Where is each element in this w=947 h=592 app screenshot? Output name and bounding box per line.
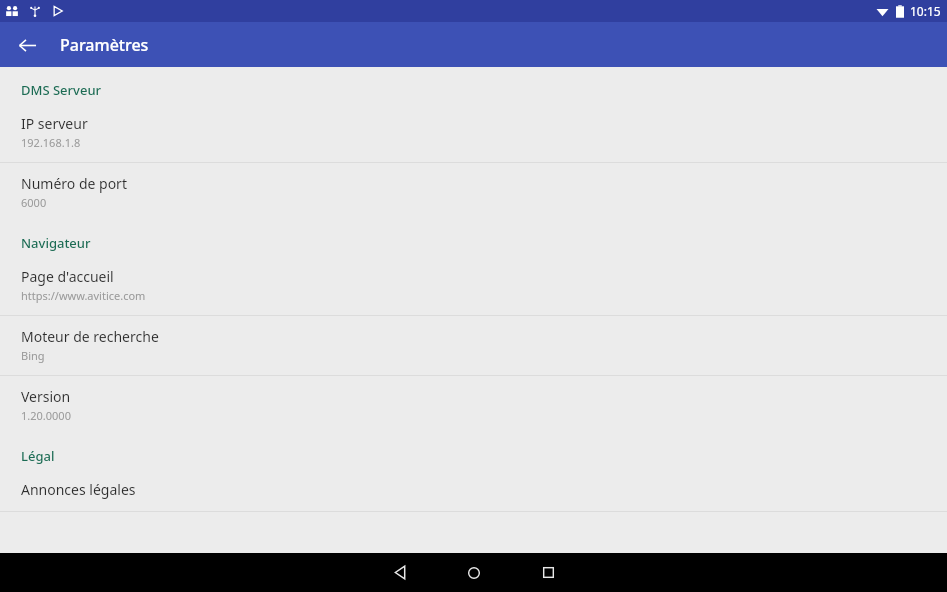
staticText: Navigateur (21, 234, 91, 252)
button[interactable]: Moteur de recherche (0, 316, 947, 375)
staticText: 10:15 (910, 3, 941, 19)
button[interactable]: Annonces légales (0, 469, 947, 511)
button[interactable]: IP serveur (0, 103, 947, 162)
staticText: Version (21, 387, 71, 406)
staticText: https://www.avitice.com (21, 288, 146, 303)
button[interactable]: Back (363, 553, 437, 592)
staticText: 6000 (21, 195, 47, 210)
button[interactable]: Version (0, 376, 947, 435)
button[interactable]: Recent apps (511, 553, 585, 592)
staticText: IP serveur (21, 114, 88, 133)
staticText: DMS Serveur (21, 81, 102, 99)
staticText: 1.20.0000 (21, 408, 71, 423)
button[interactable]: Home (437, 553, 511, 592)
staticText: Moteur de recherche (21, 327, 159, 346)
staticText: Bing (21, 348, 45, 363)
staticText: Paramètres (60, 34, 149, 56)
staticText: Numéro de port (21, 174, 127, 193)
button[interactable]: Page d'accueil (0, 256, 947, 315)
staticText: Annonces légales (21, 480, 136, 499)
staticText: Légal (21, 447, 55, 465)
staticText: Page d'accueil (21, 267, 114, 286)
button[interactable]: Back (10, 28, 44, 62)
button[interactable]: Numéro de port (0, 163, 947, 222)
staticText: 192.168.1.8 (21, 135, 81, 150)
